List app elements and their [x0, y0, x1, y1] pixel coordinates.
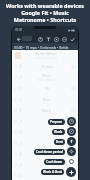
- button[interactable]: Timer: [36, 35, 44, 43]
- button[interactable]: Add interval: [66, 167, 76, 177]
- staticText: Metronome • Shortcuts: [2, 16, 88, 23]
- staticText: Cool down period: [36, 150, 63, 154]
- staticText: Google Fit • Music: [2, 9, 88, 16]
- button[interactable]: Settings: [52, 35, 60, 43]
- staticText: with bodyweight: [35, 56, 57, 60]
- button[interactable]: Back: [14, 35, 22, 43]
- button[interactable]: Cool down: [44, 159, 65, 165]
- button[interactable]: Work: [52, 129, 65, 135]
- staticText: Works with wearable devices: [2, 2, 88, 9]
- button[interactable]: Done: [68, 35, 76, 43]
- staticText: Work & Rest: [43, 170, 62, 174]
- staticText: Cool down: [46, 160, 63, 164]
- button[interactable]: Cool down period: [34, 149, 65, 155]
- staticText: Rest: [43, 97, 51, 102]
- staticText: 09:00: [15, 28, 23, 32]
- staticText: with kettlebell: [37, 78, 56, 82]
- staticText: Work: [42, 108, 51, 113]
- button[interactable]: Work: [67, 127, 76, 136]
- button[interactable]: Work & Rest: [41, 169, 64, 175]
- staticText: Prepare: [50, 120, 63, 124]
- button[interactable]: Rest: [67, 137, 76, 146]
- button[interactable]: Rest: [54, 139, 65, 145]
- staticText: 03:00 • 15 reps • 3 intervals • Kettle: [14, 45, 69, 49]
- staticText: Rest: [56, 140, 63, 144]
- staticText: Work • 30 sec: [35, 51, 57, 56]
- staticText: 15 reps: [41, 64, 53, 69]
- staticText: Work: [54, 130, 63, 134]
- staticText: Work: [42, 73, 51, 78]
- button[interactable]: Prepare: [67, 117, 76, 126]
- button[interactable]: Text: [44, 35, 52, 43]
- button[interactable]: More options: [60, 35, 68, 43]
- button[interactable]: Prepare: [48, 119, 65, 125]
- button[interactable]: Cool down: [67, 157, 76, 166]
- button[interactable]: Cool down period: [67, 147, 76, 156]
- staticText: 40: [45, 86, 49, 91]
